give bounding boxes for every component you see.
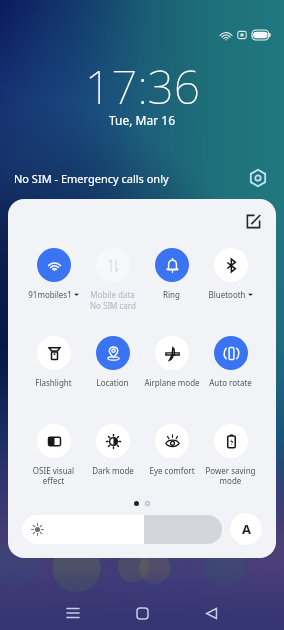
button[interactable]: Ring (142, 248, 201, 300)
staticText: Dark mode (92, 465, 134, 476)
button[interactable] (22, 515, 222, 544)
staticText: Bluetooth (208, 289, 246, 300)
staticText: 17:36 (85, 55, 200, 118)
staticText: Airplane mode (144, 377, 200, 388)
staticText: 91mobiles1 (28, 289, 72, 300)
button[interactable]: Home (123, 594, 161, 630)
button[interactable]: Power saving mode (201, 424, 260, 486)
staticText: Power saving mode (201, 465, 260, 486)
button[interactable]: Eye comfort (142, 424, 201, 476)
button[interactable]: Mobile data (83, 248, 142, 311)
button[interactable]: Bluetooth (201, 248, 260, 300)
staticText: No SIM - Emergency calls only (14, 171, 169, 186)
staticText: Tue, Mar 16 (109, 112, 176, 128)
button[interactable]: Auto rotate (201, 336, 260, 388)
button[interactable]: 91mobiles1 (24, 248, 83, 300)
button[interactable]: Edit tiles (242, 210, 264, 232)
button[interactable]: Location (83, 336, 142, 388)
staticText: A (242, 520, 251, 538)
staticText: No SIM card (90, 300, 136, 311)
staticText: Mobile data (90, 289, 135, 300)
button[interactable]: Dark mode (83, 424, 142, 476)
staticText: Flashlight (35, 377, 72, 388)
button[interactable]: OSIE visual effect (24, 424, 83, 486)
staticText: Location (96, 377, 129, 388)
staticText: OSIE visual effect (24, 465, 83, 486)
button[interactable]: Flashlight (24, 336, 83, 388)
staticText: Eye comfort (149, 465, 195, 476)
button[interactable]: Settings (246, 166, 270, 190)
button[interactable]: Back (192, 594, 230, 630)
button[interactable]: Airplane mode (142, 336, 201, 388)
button[interactable]: Recents (54, 594, 92, 630)
button[interactable]: A (230, 513, 262, 545)
staticText: Ring (163, 289, 180, 300)
staticText: Auto rotate (209, 377, 252, 388)
